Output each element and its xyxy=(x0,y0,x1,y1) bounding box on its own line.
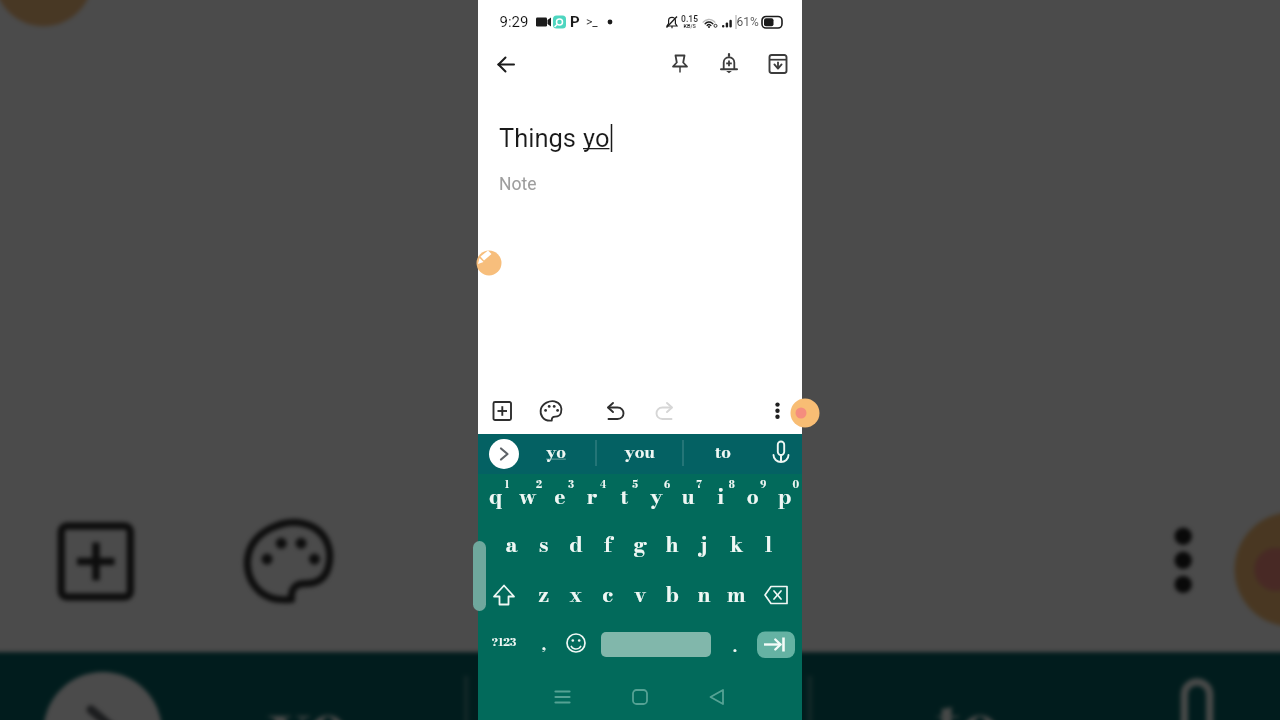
button[interactable]: Add attachment xyxy=(484,393,522,429)
button[interactable]: Note body xyxy=(490,166,790,202)
button[interactable]: d xyxy=(560,524,592,570)
button[interactable]: Backspace xyxy=(752,572,800,618)
button[interactable]: Voice input xyxy=(766,434,800,474)
button[interactable]: Emoji xyxy=(560,622,594,666)
button[interactable]: Shift xyxy=(480,572,528,618)
button[interactable]: k xyxy=(721,524,753,570)
button[interactable]: Expand toolbar xyxy=(486,436,522,472)
button[interactable]: Account xyxy=(788,393,802,429)
button[interactable]: Enter xyxy=(755,622,797,666)
button[interactable]: h xyxy=(657,524,689,570)
button[interactable]: you xyxy=(598,434,682,474)
button[interactable]: . xyxy=(718,622,752,666)
button[interactable]: Back xyxy=(694,676,742,716)
button[interactable]: More options xyxy=(760,393,796,429)
button[interactable]: x xyxy=(560,572,592,618)
button[interactable]: ?123 xyxy=(484,622,524,666)
button[interactable]: y xyxy=(641,476,673,522)
button[interactable]: a xyxy=(496,524,528,570)
button[interactable]: z xyxy=(528,572,560,618)
button[interactable]: Space xyxy=(598,622,714,666)
button[interactable]: Home xyxy=(616,676,664,716)
button[interactable]: j xyxy=(689,524,721,570)
button[interactable]: b xyxy=(656,572,688,618)
button[interactable]: Undo xyxy=(598,393,636,429)
button[interactable]: l xyxy=(753,524,785,570)
button[interactable]: u xyxy=(673,476,705,522)
button[interactable]: yo xyxy=(524,434,596,474)
button[interactable]: m xyxy=(721,572,753,618)
button[interactable]: , xyxy=(526,622,562,666)
button[interactable]: g xyxy=(624,524,656,570)
button[interactable]: s xyxy=(528,524,560,570)
button[interactable]: Background colour xyxy=(533,393,571,429)
button[interactable]: w xyxy=(512,476,544,522)
button[interactable]: n xyxy=(689,572,721,618)
button[interactable]: i xyxy=(705,476,737,522)
button[interactable]: to xyxy=(684,434,764,474)
button[interactable]: c xyxy=(592,572,624,618)
button[interactable]: f xyxy=(592,524,624,570)
button[interactable]: t xyxy=(608,476,640,522)
button[interactable]: Back xyxy=(482,44,530,84)
button[interactable]: Title xyxy=(490,116,790,162)
button[interactable]: Pin note xyxy=(660,44,700,84)
button[interactable]: p xyxy=(769,476,801,522)
button[interactable]: Redo xyxy=(646,393,684,429)
button[interactable]: o xyxy=(737,476,769,522)
button[interactable]: Archive xyxy=(758,44,798,84)
button[interactable]: e xyxy=(544,476,576,522)
button[interactable]: r xyxy=(576,476,608,522)
button[interactable]: Recents xyxy=(538,676,586,716)
button[interactable]: v xyxy=(624,572,656,618)
button[interactable]: q xyxy=(480,476,512,522)
button[interactable]: Add reminder xyxy=(709,44,749,84)
